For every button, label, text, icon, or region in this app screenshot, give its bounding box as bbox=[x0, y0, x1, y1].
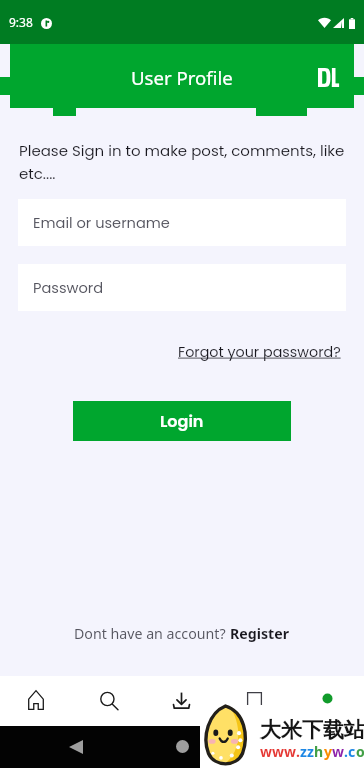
staticText: Forgot your password? bbox=[178, 342, 341, 362]
button[interactable]: Home bbox=[0, 676, 72, 726]
staticText: 9:38 bbox=[9, 14, 33, 30]
staticText: Login bbox=[160, 410, 204, 432]
staticText: Please Sign in to make post, comments, l… bbox=[19, 140, 345, 184]
button[interactable]: Profile bbox=[291, 676, 364, 726]
staticText: . bbox=[296, 742, 300, 761]
button[interactable]: Search bbox=[72, 676, 145, 726]
staticText: Dont have an account? bbox=[74, 624, 230, 643]
staticText: z bbox=[300, 742, 307, 761]
staticText: Password bbox=[33, 278, 104, 298]
button[interactable]: Forgot your password? bbox=[178, 341, 341, 363]
other: DL logo bbox=[318, 68, 340, 87]
button[interactable]: Home bbox=[176, 740, 189, 753]
staticText: 大米下载站 bbox=[260, 717, 364, 743]
staticText: c bbox=[348, 742, 356, 761]
button[interactable]: Downloads bbox=[145, 676, 218, 726]
button[interactable]: Password bbox=[18, 264, 346, 311]
button[interactable]: Dont have an account? bbox=[0, 623, 364, 643]
staticText: Register bbox=[230, 624, 290, 643]
staticText: w bbox=[260, 742, 272, 761]
staticText: o bbox=[356, 742, 364, 761]
staticText: z bbox=[307, 742, 314, 761]
staticText: . bbox=[344, 742, 348, 761]
button[interactable]: Bookmarks bbox=[218, 676, 291, 726]
staticText: User Profile bbox=[131, 65, 233, 90]
button[interactable]: Login bbox=[73, 401, 291, 441]
staticText: w bbox=[284, 742, 296, 761]
staticText: y bbox=[324, 742, 332, 761]
staticText: w bbox=[332, 742, 344, 761]
button[interactable]: Email or username bbox=[18, 199, 346, 246]
button[interactable]: Back bbox=[69, 740, 83, 754]
staticText: w bbox=[272, 742, 284, 761]
staticText: h bbox=[314, 742, 324, 761]
staticText: Email or username bbox=[33, 213, 170, 233]
